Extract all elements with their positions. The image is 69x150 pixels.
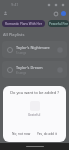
staticText: Yes, do add it [37,132,57,136]
staticText: 5 songs [16,51,27,55]
staticText: No, not now [12,132,31,136]
staticText: Taylor's Dream [16,65,43,70]
button[interactable]: Taylor's Dream [2,61,67,78]
button[interactable]: Add playlist [60,10,67,17]
button[interactable]: No, not now [11,131,32,137]
staticText: 8 songs [16,71,27,75]
button[interactable]: Peaceful Fire [48,20,69,27]
button[interactable]: Search [52,10,59,17]
staticText: Do you want to be added ? [7,90,62,95]
staticText: 9:41 [11,2,19,7]
staticText: All Playlists [3,32,25,37]
button[interactable]: Profile [2,10,9,17]
button[interactable]: Taylor's Nightmare [2,41,67,58]
staticText: Grateful [28,113,41,117]
button[interactable]: Romantic Plans With Her [2,20,45,27]
button[interactable]: Yes, do add it [36,131,58,137]
staticText: Romantic Plans With Her [5,22,43,26]
staticText: Peaceful Fire [49,22,69,26]
staticText: Taylor's Nightmare [16,45,50,50]
